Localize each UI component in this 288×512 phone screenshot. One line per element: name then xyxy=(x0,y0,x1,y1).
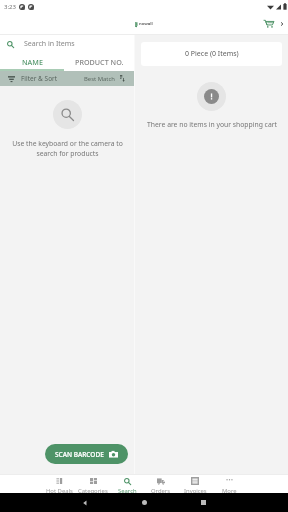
button[interactable]: NAME xyxy=(0,53,64,71)
button[interactable]: Invoices xyxy=(178,474,212,493)
staticText: 0 Piece (0 Items) xyxy=(185,49,239,59)
staticText: 3:23 xyxy=(4,3,16,11)
button[interactable]: 0 Piece (0 Items) xyxy=(141,42,282,66)
staticText: PRODUCT NO. xyxy=(75,57,124,67)
staticText: NAME xyxy=(22,57,43,67)
button[interactable]: More xyxy=(212,474,246,493)
button[interactable]: SCAN BARCODE xyxy=(45,444,128,464)
button[interactable]: Shopping cart xyxy=(264,20,283,28)
button[interactable]: Orders xyxy=(144,474,178,493)
staticText: nowall xyxy=(139,21,153,27)
button[interactable]: Hot Deals xyxy=(42,474,76,493)
staticText: Hot Deals xyxy=(46,487,73,493)
staticText: Best Match xyxy=(84,75,115,83)
button[interactable]: Filter & Sort xyxy=(0,71,134,86)
staticText: SCAN BARCODE xyxy=(55,450,104,459)
staticText: Invoices xyxy=(184,487,207,493)
button[interactable]: PRODUCT NO. xyxy=(64,53,134,71)
button[interactable]: Search in Items xyxy=(0,35,134,53)
staticText: Use the keyboard or the camera to search… xyxy=(12,139,123,158)
staticText: Orders xyxy=(151,487,171,493)
staticText: Categories xyxy=(78,487,108,493)
staticText: Filter & Sort xyxy=(21,74,58,83)
staticText: There are no items in your shopping cart xyxy=(147,120,277,129)
staticText: Search in Items xyxy=(24,39,75,49)
staticText: More xyxy=(222,487,237,493)
button[interactable]: Categories xyxy=(76,474,110,493)
staticText: Search xyxy=(118,487,137,493)
button[interactable]: Search xyxy=(110,474,144,493)
